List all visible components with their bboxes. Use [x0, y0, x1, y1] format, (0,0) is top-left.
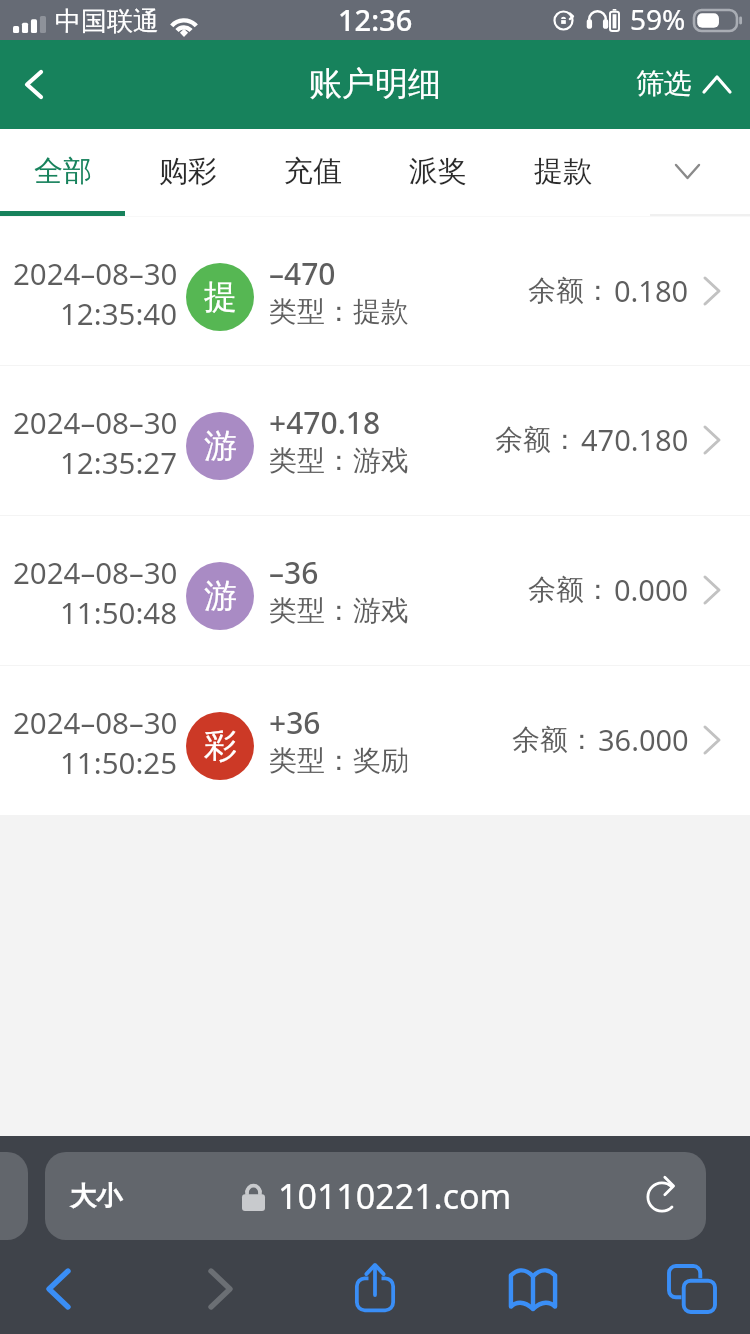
button[interactable]: 全部 — [0, 129, 125, 216]
staticText: 2024–08–30 — [13, 702, 178, 742]
staticText: 提 — [204, 276, 237, 318]
staticText: 全部 — [34, 153, 92, 190]
staticText: 12:36 — [338, 0, 413, 39]
button[interactable]: 2024–08–30 — [0, 366, 750, 515]
staticText: 2024–08–30 — [13, 402, 178, 442]
staticText: 2024–08–30 — [13, 253, 178, 293]
staticText: 余额： — [528, 572, 612, 607]
staticText: 购彩 — [159, 153, 217, 190]
staticText: 游 — [204, 425, 237, 467]
button[interactable]: Forward — [155, 1244, 285, 1334]
button[interactable]: 2024–08–30 — [0, 217, 750, 365]
staticText: 类型：游戏 — [269, 593, 409, 628]
button[interactable]: Tabs — [627, 1244, 750, 1334]
button[interactable]: More tabs — [625, 129, 750, 216]
staticText: 类型：奖励 — [269, 743, 409, 778]
button[interactable]: Back — [0, 1244, 130, 1334]
staticText: –470 — [269, 253, 336, 294]
button[interactable]: 提款 — [500, 129, 625, 216]
button[interactable]: 购彩 — [125, 129, 250, 216]
staticText: 提款 — [534, 153, 592, 190]
staticText: 筛选 — [636, 66, 692, 101]
button[interactable]: Share — [310, 1244, 440, 1334]
staticText: 470.180 — [581, 420, 689, 459]
staticText: +470.18 — [269, 402, 381, 443]
staticText: 大小 — [70, 1180, 122, 1213]
button[interactable]: 派奖 — [375, 129, 500, 216]
other: Reload — [645, 1179, 679, 1213]
staticText: 类型：游戏 — [269, 443, 409, 478]
staticText: –36 — [269, 552, 319, 593]
staticText: 10110221.com — [278, 1173, 512, 1219]
staticText: 游 — [204, 575, 237, 617]
button[interactable]: 充值 — [250, 129, 375, 216]
staticText: 12:35:40 — [60, 293, 178, 333]
button[interactable]: 2024–08–30 — [0, 516, 750, 665]
staticText: 中国联通 — [55, 5, 159, 38]
staticText: +36 — [269, 702, 321, 743]
staticText: 59% — [630, 0, 686, 38]
staticText: 0.180 — [614, 271, 689, 310]
staticText: 2024–08–30 — [13, 552, 178, 592]
button[interactable]: 大小 — [45, 1152, 706, 1240]
staticText: 余额： — [512, 722, 596, 757]
staticText: 余额： — [495, 422, 579, 457]
staticText: 0.000 — [614, 570, 689, 609]
staticText: 36.000 — [598, 720, 689, 759]
staticText: 11:50:25 — [60, 742, 178, 782]
staticText: 账户明细 — [309, 63, 441, 105]
staticText: 类型：提款 — [269, 294, 409, 329]
staticText: 11:50:48 — [60, 592, 178, 632]
staticText: 12:35:27 — [60, 442, 178, 482]
button[interactable]: 2024–08–30 — [0, 666, 750, 815]
staticText: 彩 — [204, 725, 237, 767]
staticText: 余额： — [528, 273, 612, 308]
button[interactable]: Bookmarks — [468, 1244, 598, 1334]
button[interactable]: Back — [0, 40, 68, 129]
staticText: 派奖 — [409, 153, 467, 190]
button[interactable]: 筛选 — [636, 40, 730, 129]
staticText: 充值 — [284, 153, 342, 190]
